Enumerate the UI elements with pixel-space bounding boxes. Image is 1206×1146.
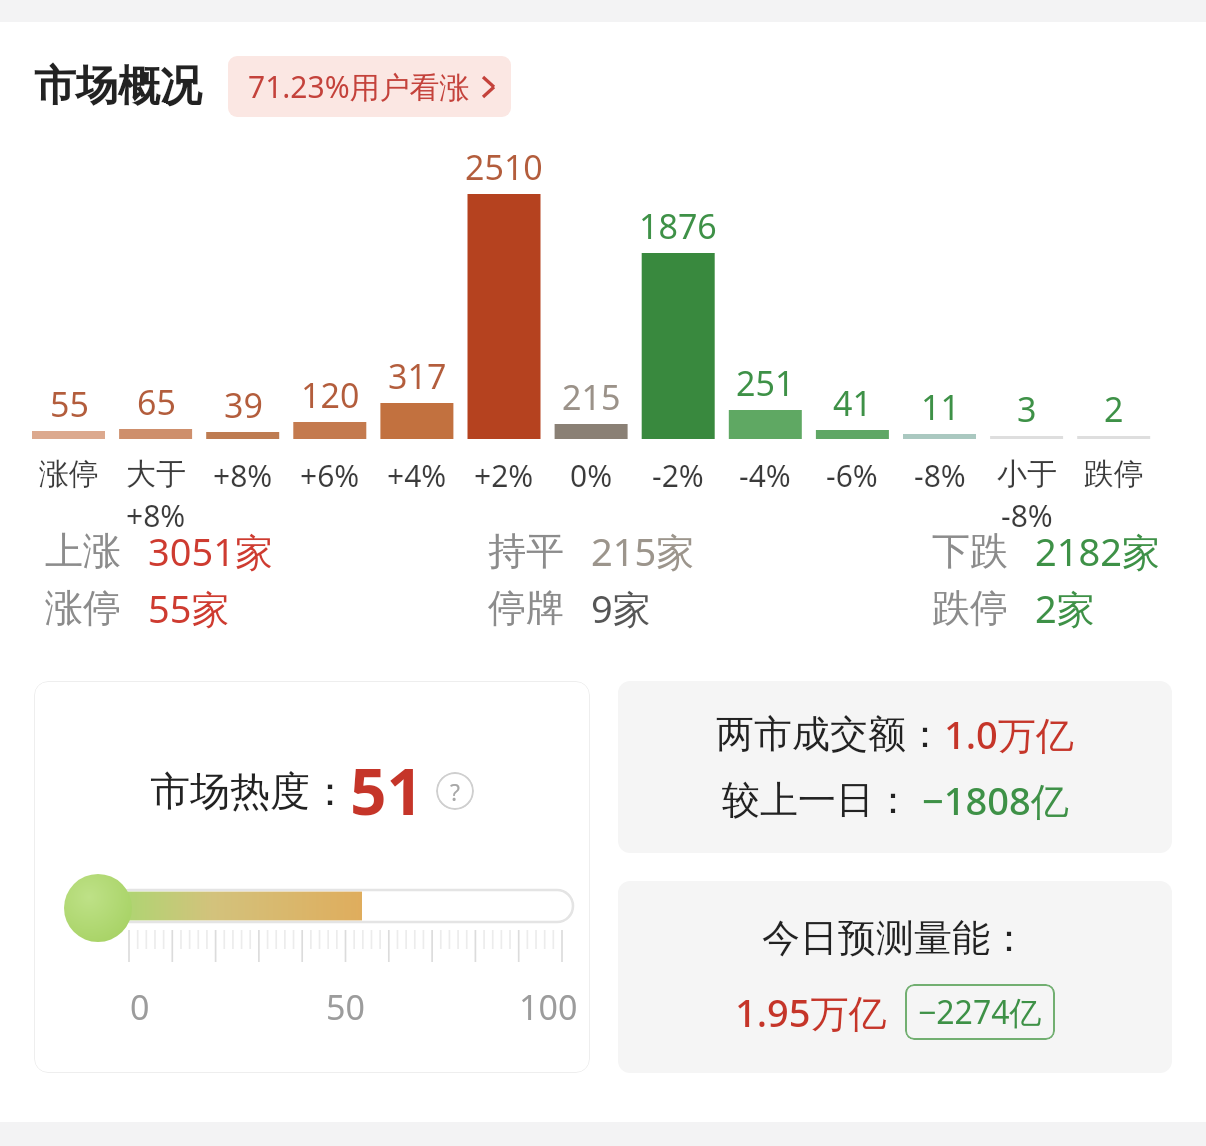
staticText: -2% (652, 455, 704, 496)
staticText: +8% (213, 455, 273, 496)
staticText: 小于 (997, 455, 1057, 493)
staticText: +4% (387, 455, 447, 496)
staticText: 0 (130, 984, 150, 1030)
staticText: ? (450, 776, 460, 807)
staticText: 1.95万亿 (735, 986, 887, 1038)
staticText: 大于 (126, 455, 186, 493)
staticText: 55家 (148, 582, 230, 634)
staticText: 2 (1104, 386, 1124, 432)
staticText: 停牌 (488, 584, 564, 632)
staticText: 251 (736, 360, 795, 406)
button[interactable]: 今日预测量能： (618, 881, 1172, 1073)
staticText: 39 (224, 382, 263, 428)
staticText: −1808亿 (922, 774, 1069, 826)
staticText: -4% (739, 455, 791, 496)
staticText: 1876 (639, 203, 717, 249)
staticText: 市场热度： (150, 766, 350, 816)
staticText: 0% (570, 455, 613, 496)
staticText: +6% (300, 455, 360, 496)
button[interactable]: 持平 (461, 525, 761, 577)
staticText: 2家 (1035, 582, 1095, 634)
staticText: 65 (137, 379, 176, 425)
button[interactable]: 市场热度： (34, 681, 590, 1073)
staticText: 上涨 (45, 527, 121, 575)
staticText: 涨停 (45, 584, 121, 632)
staticText: 跌停 (1084, 455, 1144, 493)
staticText: 9家 (591, 582, 651, 634)
staticText: 215 (562, 374, 621, 420)
staticText: 跌停 (932, 584, 1008, 632)
staticText: −2274亿 (918, 990, 1042, 1034)
staticText: 41 (833, 380, 872, 426)
staticText: 两市成交额： (716, 710, 944, 758)
button[interactable]: 71.23%用户看涨 (228, 56, 511, 117)
staticText: +8% (126, 495, 186, 536)
staticText: 持平 (488, 527, 564, 575)
staticText: 较上一日： (722, 776, 912, 824)
staticText: 215家 (591, 525, 695, 577)
staticText: 51 (350, 747, 424, 834)
staticText: 317 (388, 353, 447, 399)
staticText: 55 (50, 381, 89, 427)
button[interactable]: 市场热度说明 (436, 772, 474, 810)
staticText: 71.23%用户看涨 (248, 66, 470, 107)
staticText: 50 (326, 984, 365, 1030)
button[interactable]: 涨停 (18, 582, 318, 634)
staticText: 1.0万亿 (944, 708, 1074, 760)
staticText: +2% (474, 455, 534, 496)
staticText: 3 (1017, 386, 1037, 432)
staticText: 11 (921, 384, 960, 430)
staticText: 下跌 (932, 527, 1008, 575)
staticText: -8% (1001, 495, 1053, 536)
staticText: -6% (826, 455, 878, 496)
staticText: 今日预测量能： (762, 914, 1028, 962)
staticText: 2510 (465, 144, 543, 190)
staticText: 2182家 (1035, 525, 1160, 577)
staticText: 市场概况 (34, 60, 202, 113)
button[interactable]: 跌停 (905, 582, 1205, 634)
staticText: -8% (914, 455, 966, 496)
staticText: 120 (301, 372, 360, 418)
button[interactable]: 两市成交额： (618, 681, 1172, 853)
button[interactable]: 上涨 (18, 525, 318, 577)
staticText: 涨停 (39, 455, 99, 493)
button[interactable]: 停牌 (461, 582, 761, 634)
staticText: 3051家 (148, 525, 273, 577)
staticText: 100 (519, 984, 578, 1030)
button[interactable]: 下跌 (905, 525, 1205, 577)
